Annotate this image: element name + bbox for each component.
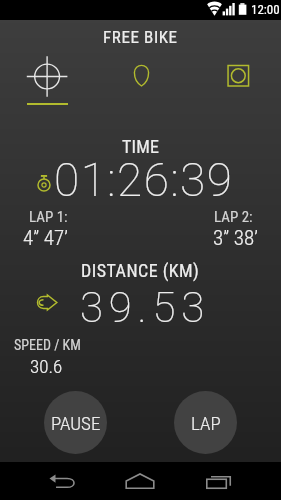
button[interactable]: LAP bbox=[174, 391, 237, 454]
button[interactable]: Recent apps bbox=[198, 467, 238, 495]
staticText: SPEED / KM bbox=[14, 337, 81, 353]
staticText: PAUSE bbox=[51, 412, 101, 434]
staticText: 12:00 bbox=[251, 2, 280, 17]
button[interactable]: Photos bbox=[187, 48, 281, 108]
staticText: 3” 38’ bbox=[213, 226, 258, 251]
staticText: 4” 47’ bbox=[23, 226, 68, 251]
staticText: LAP bbox=[191, 412, 221, 434]
button[interactable]: Home bbox=[120, 467, 160, 495]
staticText: LAP 1: bbox=[29, 208, 68, 226]
staticText: FREE BIKE bbox=[103, 27, 178, 47]
staticText: TIME bbox=[122, 136, 160, 157]
button[interactable]: Map bbox=[93, 48, 187, 108]
staticText: 39.53 bbox=[80, 283, 210, 332]
button[interactable]: PAUSE bbox=[44, 391, 107, 454]
button[interactable]: Back bbox=[42, 467, 82, 495]
staticText: 30.6 bbox=[30, 355, 63, 377]
staticText: LAP 2: bbox=[214, 208, 253, 226]
staticText: DISTANCE (KM) bbox=[81, 260, 200, 281]
button[interactable]: Tracker bbox=[0, 48, 93, 108]
staticText: 01:26:39 bbox=[54, 153, 234, 207]
